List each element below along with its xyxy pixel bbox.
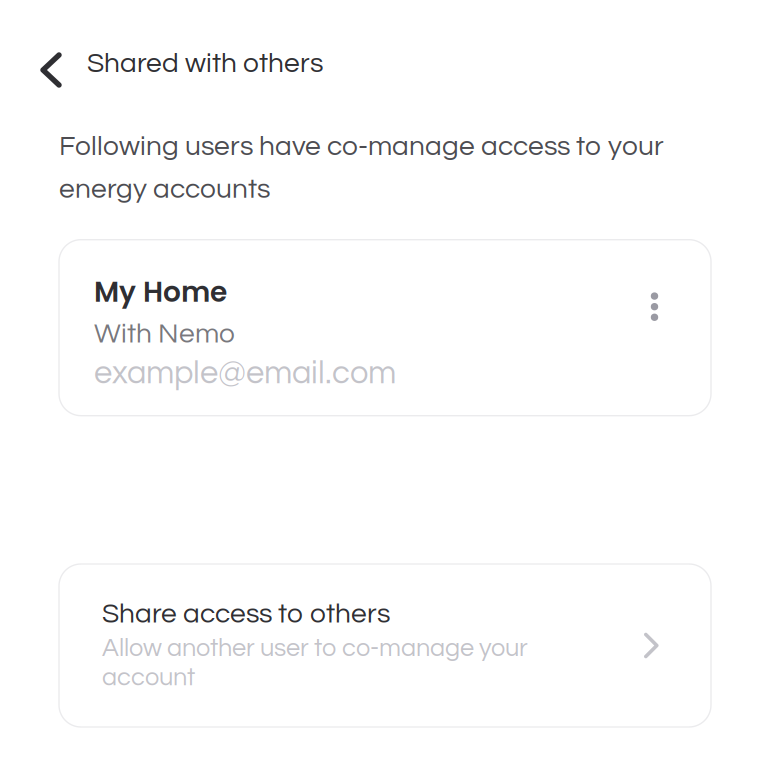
staticText: With Nemo xyxy=(94,319,235,348)
staticText: My Home xyxy=(94,272,227,311)
staticText: Share access to others xyxy=(102,599,390,628)
staticText: Allow another user to co-manage your acc… xyxy=(102,635,528,690)
staticText: example@email.com xyxy=(94,356,396,390)
button[interactable]: Back xyxy=(22,45,80,95)
button[interactable]: Share access to others xyxy=(59,564,711,727)
button[interactable]: More options xyxy=(592,247,717,366)
staticText: Following users have co-manage access to… xyxy=(59,132,664,204)
staticText: Shared with others xyxy=(87,49,323,78)
